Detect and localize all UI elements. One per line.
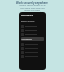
staticText: Recent activity — [21, 20, 35, 23]
staticText: Instant secure access to all your work t… — [19, 4, 46, 14]
staticText: Workspace — [21, 14, 33, 17]
staticText: Work securely anywhere — [16, 1, 48, 5]
staticText: Connected — [21, 38, 32, 41]
